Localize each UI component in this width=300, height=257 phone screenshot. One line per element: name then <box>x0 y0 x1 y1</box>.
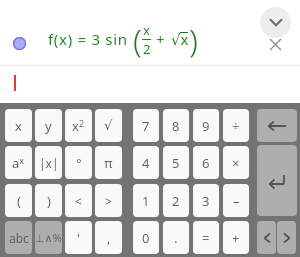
button[interactable]: ax <box>5 146 32 179</box>
staticText: > <box>105 193 112 209</box>
button[interactable]: 4 <box>133 146 159 179</box>
staticText: ax <box>12 154 25 172</box>
button[interactable]: √ <box>95 109 122 142</box>
staticText: f(x) = 3 sin <box>48 29 128 49</box>
staticText: √x <box>171 29 189 49</box>
staticText: . <box>174 229 178 247</box>
staticText: 4 <box>142 154 150 172</box>
staticText: 3 <box>202 192 210 210</box>
staticText: π <box>104 154 113 172</box>
staticText: 6 <box>202 154 210 172</box>
staticText: – <box>233 192 240 210</box>
button[interactable] <box>277 221 296 254</box>
staticText: 7 <box>142 117 150 135</box>
staticText: , <box>107 229 111 247</box>
button[interactable]: ' <box>65 221 92 254</box>
staticText: ⊥∧% <box>35 230 62 245</box>
button[interactable]: 9 <box>193 109 219 142</box>
button[interactable]: + <box>223 221 249 254</box>
staticText: ° <box>76 154 82 172</box>
button[interactable]: |x| <box>35 146 62 179</box>
button[interactable]: , <box>95 221 122 254</box>
button[interactable] <box>257 221 276 254</box>
button[interactable]: 3 <box>193 184 219 217</box>
staticText: 2 <box>172 192 180 210</box>
button[interactable]: > <box>95 184 122 217</box>
button[interactable] <box>0 66 300 103</box>
staticText: ( <box>133 18 142 60</box>
staticText: 0 <box>142 229 150 247</box>
staticText: = <box>202 229 210 247</box>
staticText: + <box>156 29 165 49</box>
button[interactable]: π <box>95 146 122 179</box>
button[interactable] <box>0 0 300 65</box>
button[interactable] <box>257 145 297 216</box>
staticText: abc <box>9 230 29 246</box>
button[interactable]: = <box>193 221 219 254</box>
button[interactable]: 2 <box>163 184 189 217</box>
button[interactable]: ( <box>5 184 32 217</box>
button[interactable]: x2 <box>65 109 92 142</box>
button[interactable] <box>268 37 283 52</box>
button[interactable]: × <box>223 146 249 179</box>
staticText: 1 <box>142 192 150 210</box>
staticText: x <box>143 21 150 39</box>
staticText: ( <box>17 192 21 210</box>
staticText: ) <box>47 192 51 210</box>
staticText: x2 <box>72 117 85 135</box>
staticText: 5 <box>172 154 180 172</box>
staticText: × <box>232 154 240 172</box>
staticText: √ <box>104 118 113 133</box>
button[interactable]: ° <box>65 146 92 179</box>
button[interactable]: . <box>163 221 189 254</box>
button[interactable]: ⊥∧% <box>35 221 62 254</box>
staticText: 9 <box>202 117 210 135</box>
button[interactable]: 1 <box>133 184 159 217</box>
staticText: < <box>75 193 82 209</box>
staticText: |x| <box>39 155 59 171</box>
button[interactable]: < <box>65 184 92 217</box>
staticText: x <box>15 117 22 135</box>
button[interactable]: 7 <box>133 109 159 142</box>
button[interactable]: y <box>35 109 62 142</box>
staticText: + <box>232 229 240 247</box>
button[interactable]: – <box>223 184 249 217</box>
staticText: ' <box>77 229 80 247</box>
button[interactable]: 6 <box>193 146 219 179</box>
button[interactable]: abc <box>5 221 32 254</box>
button[interactable] <box>257 109 297 142</box>
button[interactable]: 0 <box>133 221 159 254</box>
button[interactable]: 5 <box>163 146 189 179</box>
button[interactable]: x <box>5 109 32 142</box>
button[interactable]: ÷ <box>223 109 249 142</box>
staticText: 8 <box>172 117 180 135</box>
button[interactable] <box>260 7 291 38</box>
button[interactable]: ) <box>35 184 62 217</box>
button[interactable]: 8 <box>163 109 189 142</box>
staticText: ÷ <box>232 117 240 135</box>
staticText: y <box>45 117 52 135</box>
staticText: 2 <box>143 40 151 58</box>
staticText: ) <box>189 18 198 60</box>
